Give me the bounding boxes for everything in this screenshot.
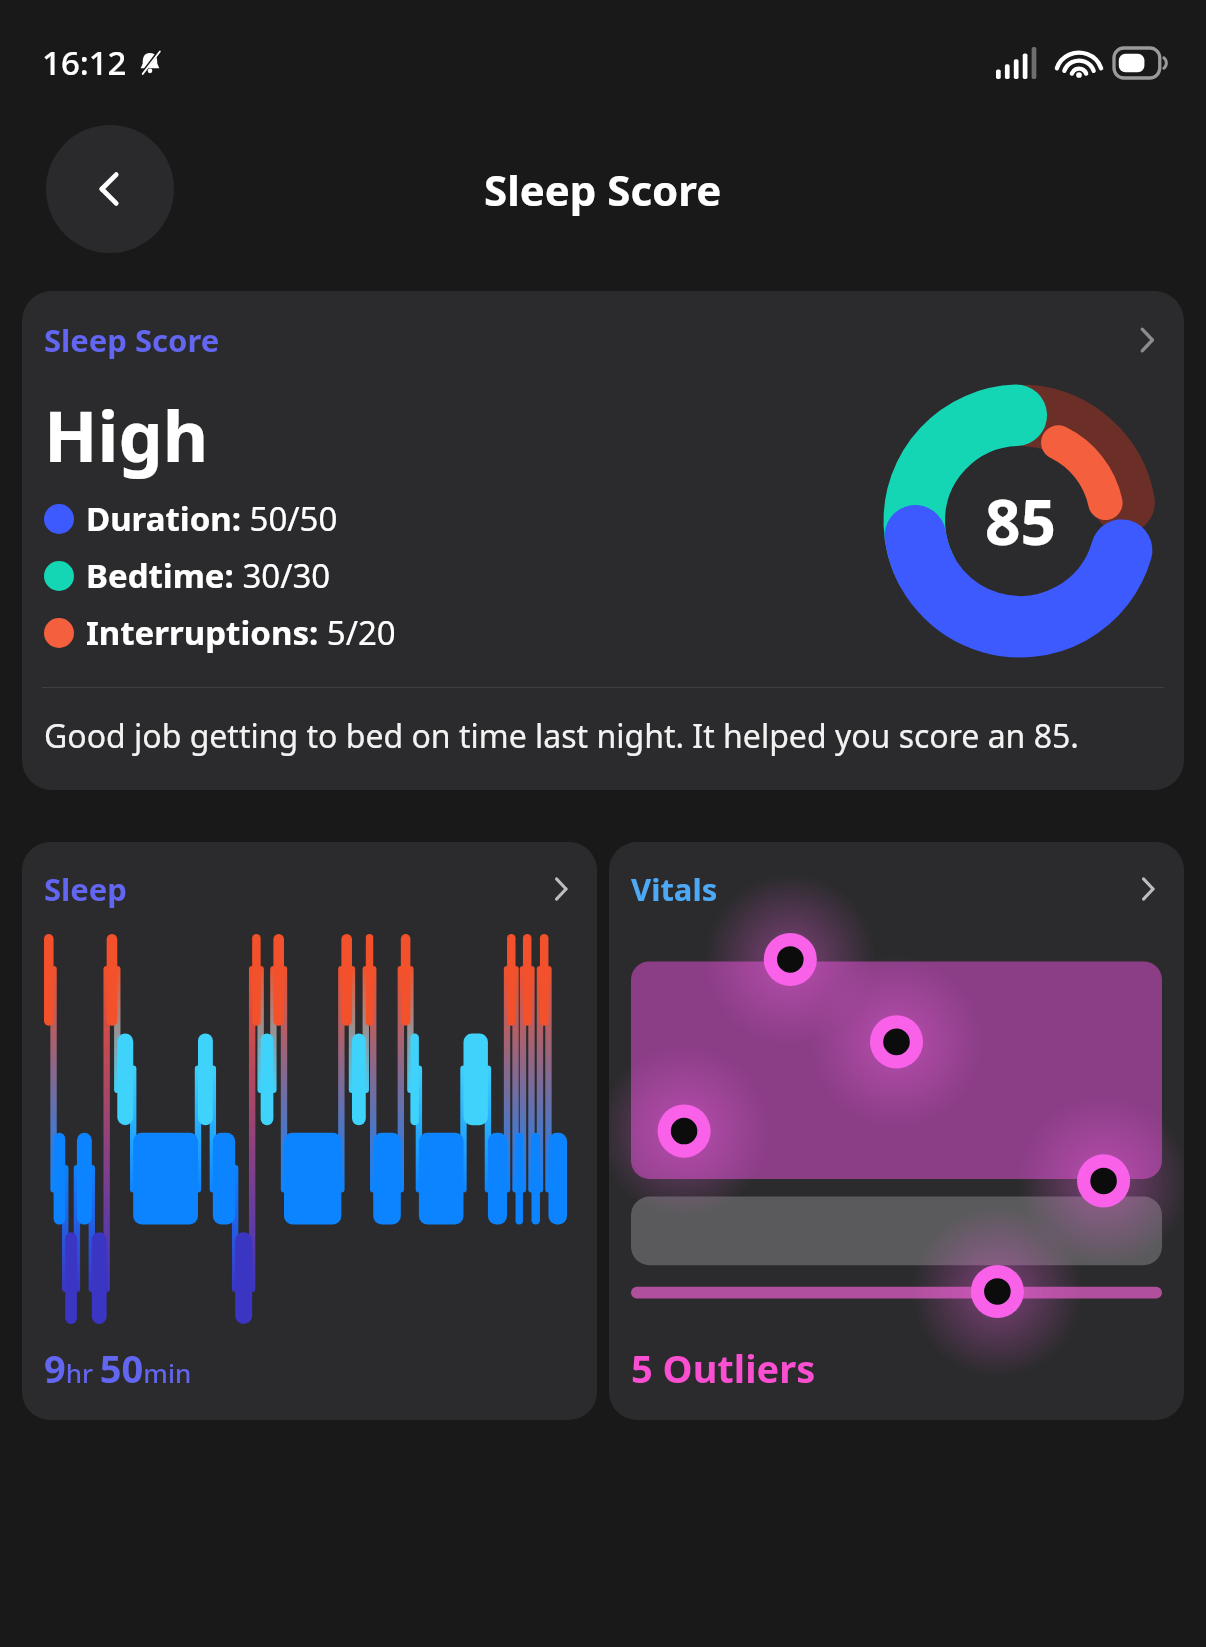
staticText: Sleep <box>44 868 127 910</box>
button[interactable]: Sleep <box>22 842 597 1420</box>
button[interactable]: Vitals <box>609 842 1184 1420</box>
staticText: Duration: 50/50 <box>86 496 338 541</box>
staticText: 5 Outliers <box>631 1342 816 1394</box>
staticText: High <box>44 387 209 482</box>
staticText: 85 <box>985 479 1056 563</box>
staticText: 16:12 <box>42 40 127 85</box>
button[interactable]: Back <box>46 125 174 253</box>
button[interactable]: Sleep Score <box>22 291 1184 790</box>
staticText: Sleep Score <box>484 161 722 218</box>
staticText: Good job getting to bed on time last nig… <box>44 714 1079 758</box>
staticText: Vitals <box>631 868 718 910</box>
staticText: Interruptions: 5/20 <box>86 610 396 655</box>
staticText: 9hr 50min <box>44 1342 192 1394</box>
staticText: Bedtime: 30/30 <box>86 553 331 598</box>
staticText: Sleep Score <box>44 319 220 361</box>
